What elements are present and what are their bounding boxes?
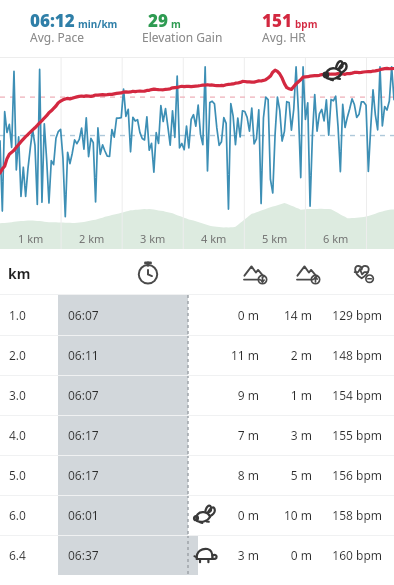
button[interactable]: 5.0: [0, 455, 394, 495]
staticText: 156 bpm: [332, 467, 382, 483]
staticText: bpm: [295, 17, 318, 31]
staticText: 2 m: [290, 347, 312, 363]
button[interactable]: Average heart rate: [349, 259, 377, 287]
staticText: 11 m: [230, 347, 259, 363]
staticText: 2 km: [79, 231, 105, 246]
staticText: 5.0: [9, 467, 26, 483]
button[interactable]: Elevation loss: [294, 259, 322, 287]
staticText: 6.4: [9, 547, 26, 563]
staticText: 06:17: [68, 427, 99, 443]
staticText: 0 m: [290, 547, 312, 563]
staticText: 3 m: [237, 547, 259, 563]
button[interactable]: 4.0: [0, 415, 394, 455]
staticText: 8 m: [237, 467, 259, 483]
staticText: 158 bpm: [332, 507, 382, 523]
staticText: 154 bpm: [332, 387, 382, 403]
staticText: 1 km: [18, 231, 44, 246]
staticText: 3.0: [9, 387, 26, 403]
button[interactable]: 6.0: [0, 495, 394, 535]
staticText: 3 m: [290, 427, 312, 443]
staticText: 06:11: [68, 347, 99, 363]
staticText: 0 m: [237, 307, 259, 323]
staticText: 29: [148, 9, 168, 32]
staticText: 160 bpm: [332, 547, 382, 563]
button[interactable]: 2.0: [0, 335, 394, 375]
staticText: 4 km: [201, 231, 227, 246]
staticText: 6.0: [9, 507, 26, 523]
staticText: 2.0: [9, 347, 26, 363]
staticText: 06:17: [68, 467, 99, 483]
staticText: 06:12: [30, 9, 75, 32]
staticText: 06:01: [68, 507, 99, 523]
staticText: 4.0: [9, 427, 26, 443]
button[interactable]: 6.4: [0, 535, 394, 575]
staticText: km: [8, 264, 31, 283]
staticText: 06:07: [68, 307, 99, 323]
staticText: 1.0: [9, 307, 26, 323]
staticText: 5 m: [290, 467, 312, 483]
staticText: 155 bpm: [332, 427, 382, 443]
staticText: 151: [262, 9, 292, 32]
staticText: 06:37: [68, 547, 99, 563]
staticText: Avg. Pace: [30, 29, 85, 45]
staticText: 10 m: [283, 507, 312, 523]
staticText: min/km: [78, 17, 118, 31]
staticText: 0 m: [237, 507, 259, 523]
staticText: 6 km: [323, 231, 349, 246]
staticText: m: [171, 17, 181, 31]
staticText: 129 bpm: [332, 307, 382, 323]
staticText: 3 km: [140, 231, 166, 246]
button[interactable]: Duration: [134, 259, 162, 287]
staticText: 06:07: [68, 387, 99, 403]
button[interactable]: 3.0: [0, 375, 394, 415]
staticText: 5 km: [262, 231, 288, 246]
staticText: 9 m: [237, 387, 259, 403]
button[interactable]: Elevation gain: [241, 259, 269, 287]
staticText: 14 m: [283, 307, 312, 323]
button[interactable]: 1.0: [0, 295, 394, 335]
staticText: Avg. HR: [262, 29, 306, 45]
staticText: 148 bpm: [332, 347, 382, 363]
staticText: Elevation Gain: [142, 29, 223, 45]
staticText: 7 m: [237, 427, 259, 443]
staticText: 1 m: [290, 387, 312, 403]
